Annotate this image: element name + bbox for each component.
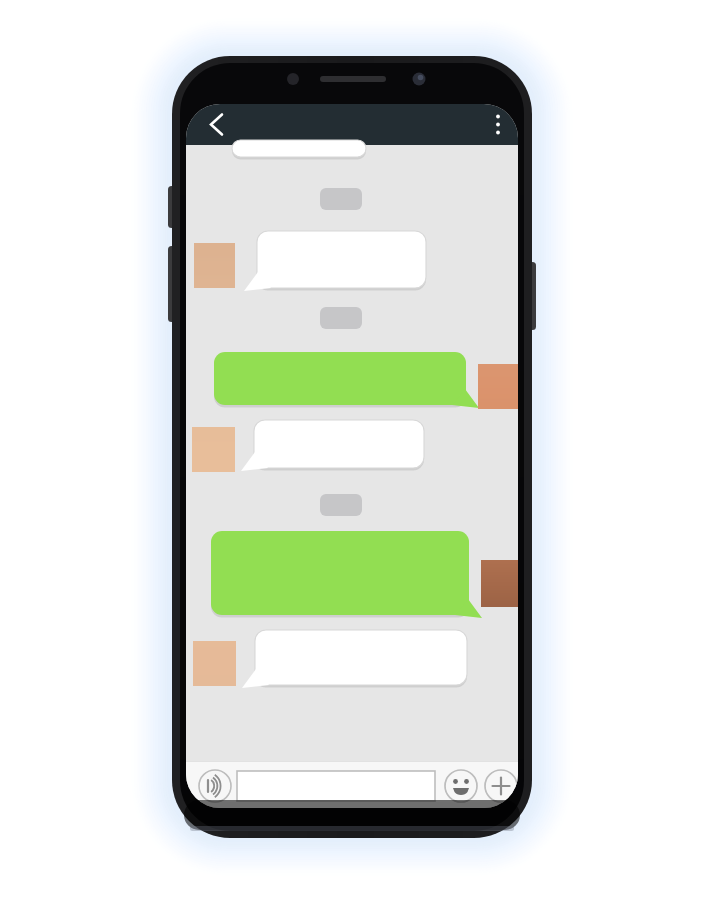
button[interactable]: Message input (237, 770, 436, 802)
button[interactable]: Emoji (444, 769, 478, 803)
button[interactable]: Voice message (198, 769, 232, 803)
button[interactable] (257, 231, 427, 289)
button[interactable] (214, 352, 467, 406)
button[interactable]: Add attachment (484, 769, 518, 803)
button[interactable] (255, 630, 468, 686)
button[interactable]: More options (482, 107, 514, 143)
button[interactable]: Back (197, 107, 233, 143)
button[interactable] (254, 420, 425, 469)
button[interactable] (211, 531, 470, 616)
